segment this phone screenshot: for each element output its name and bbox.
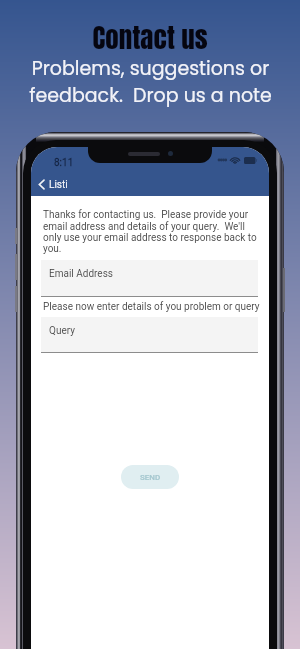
staticText: SEND <box>140 473 161 482</box>
button[interactable]: Listi <box>31 173 74 196</box>
staticText: Listi <box>49 179 68 191</box>
staticText: Email Address <box>49 268 113 280</box>
staticText: Please now enter details of you problem … <box>43 301 260 313</box>
staticText: Contact us <box>92 17 208 58</box>
button[interactable]: SEND <box>121 465 179 489</box>
staticText: Problems, suggestions or feedback. Drop … <box>29 55 272 108</box>
staticText: 8:11 <box>54 157 74 169</box>
staticText: Query <box>49 325 75 337</box>
button[interactable]: Query <box>41 317 258 352</box>
staticText: Thanks for contacting us. Please provide… <box>43 209 261 254</box>
button[interactable]: Email Address <box>41 260 258 296</box>
